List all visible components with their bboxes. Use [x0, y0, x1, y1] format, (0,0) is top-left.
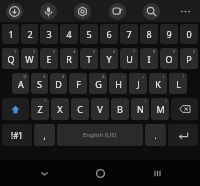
staticText: 3 — [53, 49, 56, 54]
button[interactable]: N — [131, 98, 149, 120]
button[interactable]: E — [40, 48, 58, 69]
button[interactable]: 9 — [160, 24, 178, 44]
button[interactable]: Z — [31, 98, 49, 120]
staticText: V — [97, 103, 103, 115]
button[interactable]: Space — [57, 124, 143, 146]
staticText: !#1 — [11, 130, 23, 141]
staticText: U — [126, 53, 133, 65]
button[interactable]: F — [69, 73, 87, 94]
button[interactable]: . — [145, 124, 166, 146]
staticText: 8 — [153, 49, 156, 54]
button[interactable]: G — [89, 73, 107, 94]
staticText: A — [18, 78, 24, 90]
staticText: R — [66, 53, 72, 65]
button[interactable]: Backspace — [171, 98, 198, 120]
staticText: ) — [183, 74, 185, 79]
button[interactable]: Y — [100, 48, 118, 69]
staticText: 7 — [126, 28, 132, 40]
staticText: English (US) — [83, 131, 117, 139]
button[interactable]: 2 — [21, 24, 38, 44]
button[interactable]: Sticker — [6, 3, 23, 20]
button[interactable]: 0 — [180, 24, 198, 44]
staticText: 5 — [86, 28, 92, 40]
button[interactable]: Voice input — [40, 3, 57, 20]
button[interactable]: Shift — [2, 98, 29, 120]
button[interactable]: Translate — [109, 3, 126, 20]
button[interactable]: Home — [87, 160, 113, 186]
staticText: 2 — [27, 28, 33, 40]
button[interactable]: 1 — [2, 24, 19, 44]
button[interactable]: Search — [143, 3, 160, 20]
staticText: 3 — [46, 28, 52, 40]
button[interactable]: 8 — [140, 24, 158, 44]
staticText: ' — [86, 99, 87, 104]
button[interactable]: L — [169, 73, 187, 94]
staticText: M — [156, 103, 165, 115]
button[interactable]: Q — [2, 48, 19, 69]
button[interactable]: K — [149, 73, 167, 94]
staticText: E — [46, 53, 52, 65]
staticText: 6 — [106, 28, 112, 40]
button[interactable]: Recents — [144, 160, 170, 186]
button[interactable]: H — [109, 73, 127, 94]
staticText: Y — [106, 53, 112, 65]
staticText: 0 — [193, 49, 196, 54]
button[interactable]: Settings — [74, 3, 91, 20]
button[interactable]: P — [180, 48, 198, 69]
staticText: 9 — [166, 28, 172, 40]
staticText: O — [165, 53, 173, 65]
staticText: F — [76, 78, 81, 90]
button[interactable]: R — [60, 48, 78, 69]
button[interactable]: I — [140, 48, 158, 69]
staticText: T — [86, 53, 92, 65]
staticText: ! — [145, 99, 147, 104]
button[interactable]: 5 — [80, 24, 98, 44]
button[interactable]: B — [111, 98, 129, 120]
button[interactable]: More options — [177, 3, 194, 20]
button[interactable]: M — [151, 98, 169, 120]
button[interactable]: U — [120, 48, 138, 69]
staticText: ( — [163, 74, 165, 79]
button[interactable]: S — [31, 73, 48, 94]
button[interactable]: !#1 — [2, 124, 32, 146]
staticText: 8 — [146, 28, 152, 40]
staticText: 5 — [93, 49, 96, 54]
staticText: K — [155, 78, 161, 90]
button[interactable]: 4 — [60, 24, 78, 44]
staticText: 7 — [133, 49, 136, 54]
button[interactable]: W — [21, 48, 38, 69]
staticText: I — [147, 53, 151, 65]
staticText: # — [43, 74, 46, 79]
button[interactable]: 7 — [120, 24, 138, 44]
button[interactable]: T — [80, 48, 98, 69]
staticText: + — [142, 74, 145, 79]
staticText: B — [117, 103, 123, 115]
staticText: N — [137, 103, 144, 115]
staticText: , — [43, 130, 46, 141]
button[interactable]: O — [160, 48, 178, 69]
staticText: J — [137, 78, 140, 90]
staticText: S — [37, 78, 42, 90]
button[interactable]: C — [71, 98, 89, 120]
staticText: . — [154, 130, 157, 141]
staticText: _ — [83, 74, 85, 79]
staticText: 4 — [73, 49, 76, 54]
button[interactable]: D — [50, 73, 67, 94]
staticText: 6 — [113, 49, 116, 54]
staticText: @ — [23, 74, 27, 79]
button[interactable]: 3 — [40, 24, 58, 44]
staticText: * — [44, 99, 47, 104]
button[interactable]: X — [51, 98, 69, 120]
staticText: 1 — [8, 28, 14, 40]
button[interactable]: J — [129, 73, 147, 94]
staticText: Z — [37, 103, 43, 115]
button[interactable]: V — [91, 98, 109, 120]
button[interactable]: Back — [31, 160, 57, 186]
button[interactable]: 6 — [100, 24, 118, 44]
button[interactable]: Enter — [168, 124, 198, 146]
button[interactable]: A — [12, 73, 29, 94]
staticText: Q — [7, 53, 15, 65]
staticText: G — [95, 78, 102, 90]
button[interactable]: , — [34, 124, 55, 146]
staticText: : — [105, 99, 107, 104]
